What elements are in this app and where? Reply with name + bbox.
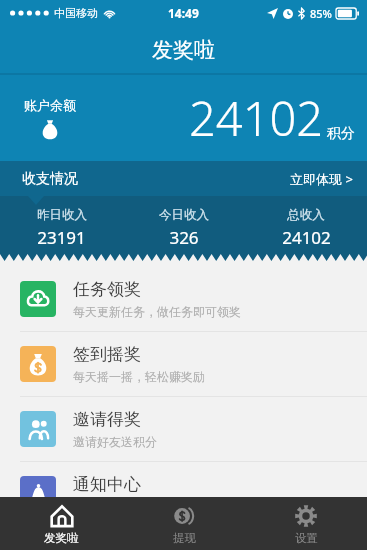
staticText: 24102	[282, 226, 331, 249]
staticText: 积分	[327, 125, 355, 143]
staticText: 签到摇奖	[73, 344, 141, 365]
staticText: 发奖啦	[44, 531, 79, 545]
button[interactable]: 通知中心	[0, 462, 367, 527]
staticText: 设置	[295, 531, 318, 545]
button[interactable]: 邀请得奖	[0, 397, 367, 462]
staticText: 23191	[37, 226, 86, 249]
staticText: 85%	[310, 6, 332, 21]
staticText: 提现	[173, 531, 196, 545]
staticText: 发奖啦	[152, 37, 215, 63]
staticText: 14:49	[168, 5, 199, 21]
staticText: 24102	[189, 86, 324, 150]
staticText: 326	[169, 226, 199, 249]
staticText: 通知中心	[73, 474, 141, 495]
button[interactable]: 任务领奖	[0, 267, 367, 332]
button[interactable]: 签到摇奖	[0, 332, 367, 397]
staticText: 立即体现 >	[290, 170, 353, 188]
staticText: 邀请好友送积分	[73, 434, 157, 449]
staticText: 任务领奖	[73, 279, 141, 300]
staticText: 邀请得奖	[73, 409, 141, 430]
staticText: 每天摇一摇，轻松赚奖励	[73, 369, 205, 384]
staticText: 中国移动	[54, 6, 98, 20]
staticText: 今日收入	[159, 207, 209, 223]
staticText: 收支情况	[22, 170, 78, 188]
button[interactable]: 发奖啦	[0, 497, 123, 550]
staticText: 账户余额	[24, 97, 76, 113]
staticText: 每天更新任务，做任务即可领奖	[73, 304, 241, 319]
staticText: 昨日收入	[37, 207, 87, 223]
button[interactable]: 提现	[123, 497, 245, 550]
button[interactable]: 立即体现 >	[276, 164, 367, 194]
staticText: 总收入	[287, 207, 325, 223]
button[interactable]: 设置	[245, 497, 367, 550]
